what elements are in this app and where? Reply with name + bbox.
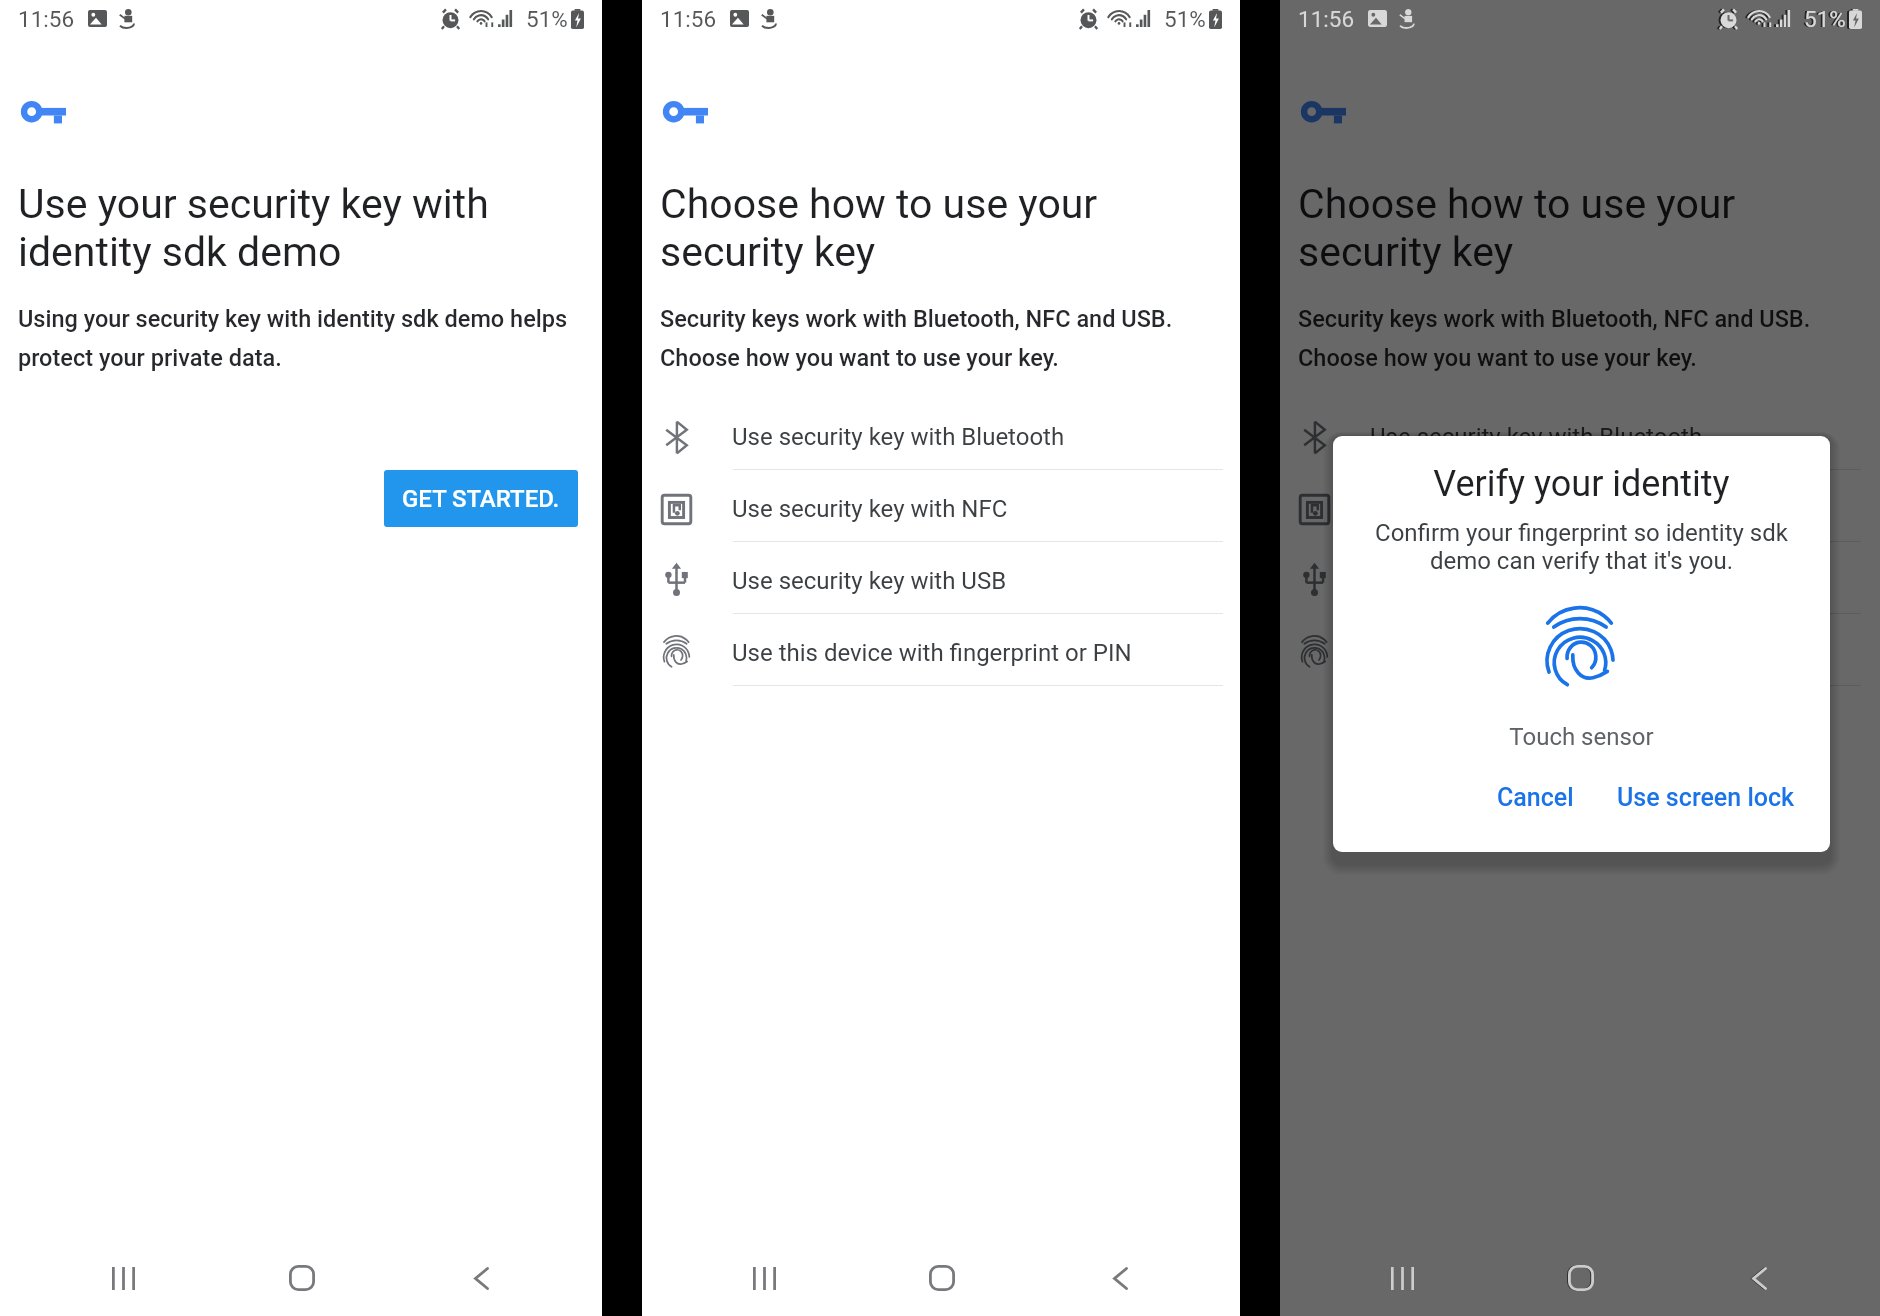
staticText: Use this device with fingerprint or PIN xyxy=(732,639,1132,667)
button[interactable]: Home xyxy=(916,1252,968,1304)
staticText: Security keys work with Bluetooth, NFC a… xyxy=(1298,305,1843,372)
staticText: Use security key with Bluetooth xyxy=(732,423,1065,451)
button[interactable]: Use this device with fingerprint or PIN xyxy=(1280,614,1880,686)
staticText: 11:56 xyxy=(660,6,717,32)
button[interactable]: Home xyxy=(276,1252,328,1304)
button[interactable]: Home xyxy=(1554,1252,1606,1304)
button[interactable]: Recent apps xyxy=(1376,1252,1428,1304)
staticText: Choose how to use your security key xyxy=(1298,180,1768,276)
staticText: Use security key with NFC xyxy=(1370,495,1646,523)
button[interactable]: Back xyxy=(455,1252,507,1304)
button[interactable]: Use security key with NFC xyxy=(1280,470,1880,542)
staticText: Choose how to use your security key xyxy=(660,180,1130,276)
staticText: 51% xyxy=(1802,6,1844,32)
staticText: Use security key with NFC xyxy=(732,495,1008,523)
button[interactable]: Cancel xyxy=(1481,775,1590,820)
staticText: Use your security key with identity sdk … xyxy=(18,180,518,276)
button[interactable]: Use security key with USB xyxy=(1280,542,1880,614)
staticText: Use security key with USB xyxy=(732,567,1007,595)
staticText: Use security key with Bluetooth xyxy=(1370,423,1703,451)
staticText: Cancel xyxy=(1497,783,1574,812)
button[interactable]: Recent apps xyxy=(97,1252,149,1304)
button[interactable]: Recent apps xyxy=(738,1252,790,1304)
staticText: Use security key with USB xyxy=(1370,567,1645,595)
staticText: Use screen lock xyxy=(1617,783,1795,812)
button[interactable]: Use this device with fingerprint or PIN xyxy=(642,614,1240,686)
button[interactable]: Home xyxy=(1555,1252,1607,1304)
staticText: Security keys work with Bluetooth, NFC a… xyxy=(660,305,1205,372)
staticText: Confirm your fingerprint so identity sdk… xyxy=(1372,519,1791,575)
button[interactable]: Back xyxy=(1732,1252,1784,1304)
staticText: Using your security key with identity sd… xyxy=(18,305,584,372)
button[interactable]: Use security key with Bluetooth xyxy=(1280,398,1880,470)
button[interactable]: Use security key with Bluetooth xyxy=(642,398,1240,470)
button[interactable]: Use security key with USB xyxy=(642,542,1240,614)
staticText: 51% xyxy=(1164,6,1206,32)
staticText: 11:56 xyxy=(1298,6,1355,32)
button[interactable]: Use screen lock xyxy=(1601,775,1811,820)
button[interactable]: Back xyxy=(1733,1252,1785,1304)
staticText: Use this device with fingerprint or PIN xyxy=(1370,639,1770,667)
staticText: Verify your identity xyxy=(1333,463,1830,505)
staticText: 11:56 xyxy=(1298,6,1355,32)
button[interactable]: GET STARTED. xyxy=(384,470,578,527)
staticText: GET STARTED. xyxy=(402,485,560,513)
staticText: Touch sensor xyxy=(1333,723,1830,751)
button[interactable]: Back xyxy=(1094,1252,1146,1304)
staticText: 51% xyxy=(1804,6,1846,32)
staticText: 11:56 xyxy=(18,6,75,32)
button[interactable]: Use security key with NFC xyxy=(642,470,1240,542)
button[interactable]: Recent apps xyxy=(1376,1252,1428,1304)
staticText: 51% xyxy=(526,6,568,32)
